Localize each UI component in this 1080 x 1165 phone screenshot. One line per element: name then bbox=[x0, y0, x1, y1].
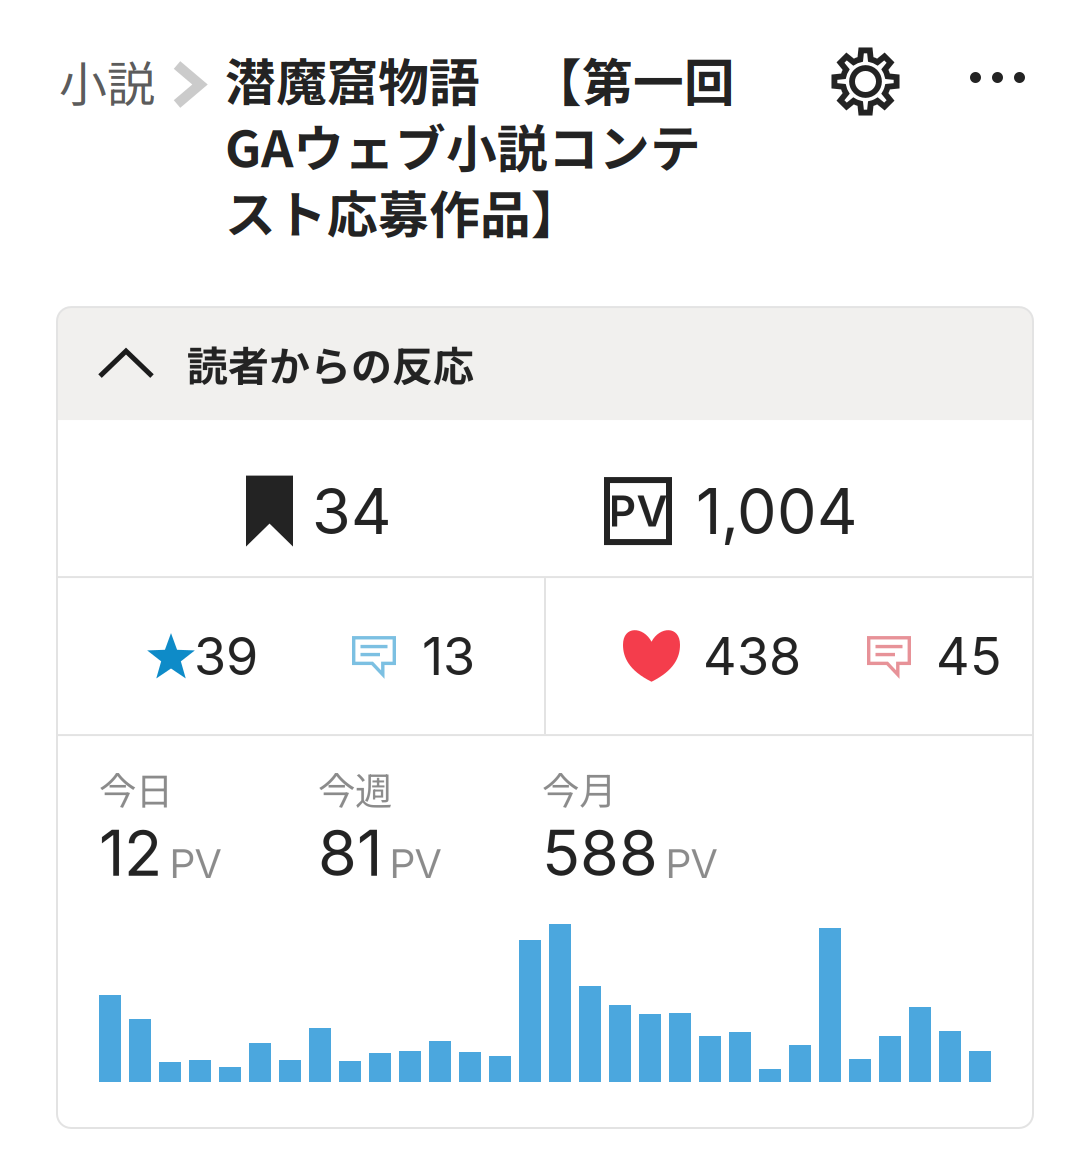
staticText: 読者からの反応 bbox=[187, 334, 474, 393]
button[interactable]: 読者からの反応 bbox=[57, 307, 1033, 420]
staticText: 1,004 bbox=[696, 473, 857, 549]
staticText: 34 bbox=[312, 473, 391, 549]
staticText: 13 bbox=[422, 625, 475, 687]
staticText: 39 bbox=[194, 625, 258, 687]
staticText: 小説 bbox=[59, 46, 155, 115]
staticText: 今月 bbox=[542, 761, 616, 815]
staticText: PV bbox=[666, 840, 717, 888]
staticText: 潜魔窟物語 【第一回GAウェブ小説コンテスト応募作品】 bbox=[225, 46, 735, 244]
staticText: 81 bbox=[318, 815, 382, 891]
staticText: PV bbox=[608, 485, 667, 537]
button[interactable]: More options bbox=[970, 72, 1025, 83]
staticText: 588 bbox=[542, 815, 658, 891]
staticText: PV bbox=[170, 840, 221, 888]
button[interactable]: Settings bbox=[831, 47, 900, 116]
staticText: 12 bbox=[99, 815, 162, 891]
button[interactable]: 小説 bbox=[59, 46, 155, 115]
staticText: 今週 bbox=[318, 761, 392, 815]
staticText: PV bbox=[390, 840, 441, 888]
staticText: 今日 bbox=[99, 761, 173, 815]
staticText: 438 bbox=[703, 625, 801, 687]
staticText: 45 bbox=[936, 625, 1002, 687]
